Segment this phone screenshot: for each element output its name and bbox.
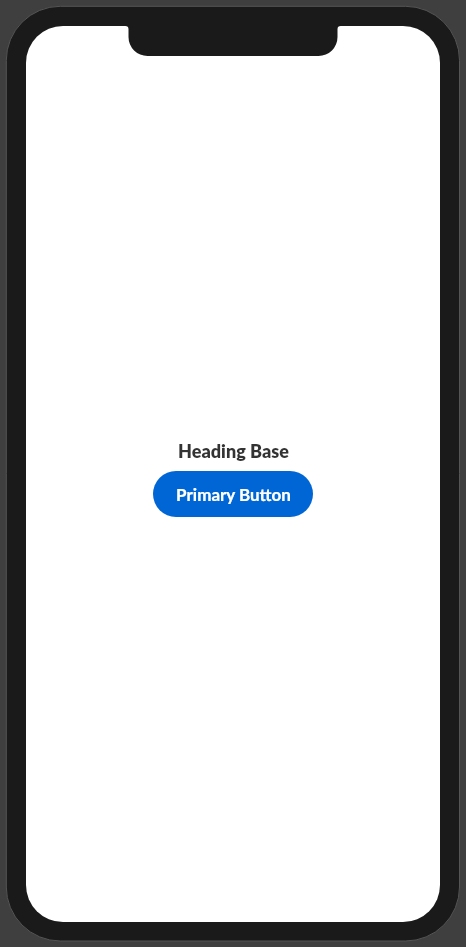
staticText: Primary Button bbox=[176, 484, 291, 504]
staticText: Heading Base bbox=[178, 440, 289, 462]
button[interactable]: Primary Button bbox=[153, 471, 313, 517]
